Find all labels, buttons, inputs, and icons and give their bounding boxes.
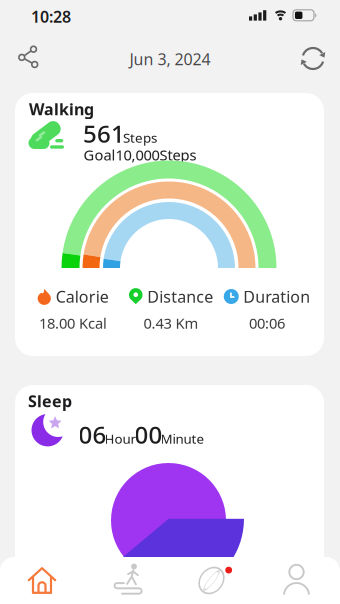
- staticText: Walking: [29, 98, 94, 120]
- staticText: 00:06: [249, 313, 285, 333]
- staticText: Goal10,000Steps: [83, 145, 196, 164]
- staticText: 00: [134, 418, 162, 450]
- staticText: 06: [78, 418, 106, 450]
- staticText: 561: [83, 117, 125, 149]
- staticText: 18.00 Kcal: [39, 313, 107, 333]
- staticText: Jun 3, 2024: [129, 48, 210, 70]
- button[interactable]: [295, 40, 331, 76]
- staticText: Hour: [104, 430, 136, 447]
- staticText: Calorie: [56, 286, 109, 307]
- button[interactable]: [170, 557, 255, 604]
- staticText: Minute: [160, 430, 204, 447]
- staticText: 0.43 Km: [143, 313, 198, 333]
- button[interactable]: [85, 557, 170, 604]
- staticText: Distance: [147, 286, 213, 307]
- staticText: Sleep: [28, 390, 72, 412]
- staticText: 10:28: [31, 6, 71, 27]
- staticText: Duration: [243, 286, 310, 307]
- button[interactable]: [10, 39, 46, 75]
- button[interactable]: [255, 557, 340, 604]
- button[interactable]: [0, 557, 85, 604]
- staticText: Steps: [123, 129, 157, 146]
